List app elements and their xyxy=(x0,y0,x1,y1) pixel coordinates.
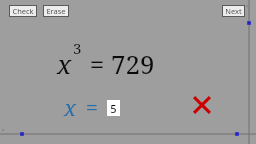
staticText: x xyxy=(57,46,72,81)
button[interactable]: Erase xyxy=(43,5,69,17)
staticText: = 729 xyxy=(83,46,155,81)
staticText: 5 xyxy=(110,101,117,116)
button[interactable]: Next xyxy=(222,5,245,17)
other: Incorrect xyxy=(191,94,213,116)
staticText: = xyxy=(80,91,104,121)
button[interactable]: Answer input xyxy=(107,100,120,116)
staticText: Check xyxy=(12,6,34,16)
staticText: 3 xyxy=(73,38,82,58)
button[interactable]: Check xyxy=(9,5,37,17)
staticText: Next xyxy=(225,6,242,16)
staticText: x xyxy=(64,92,77,122)
staticText: Erase xyxy=(46,6,66,16)
